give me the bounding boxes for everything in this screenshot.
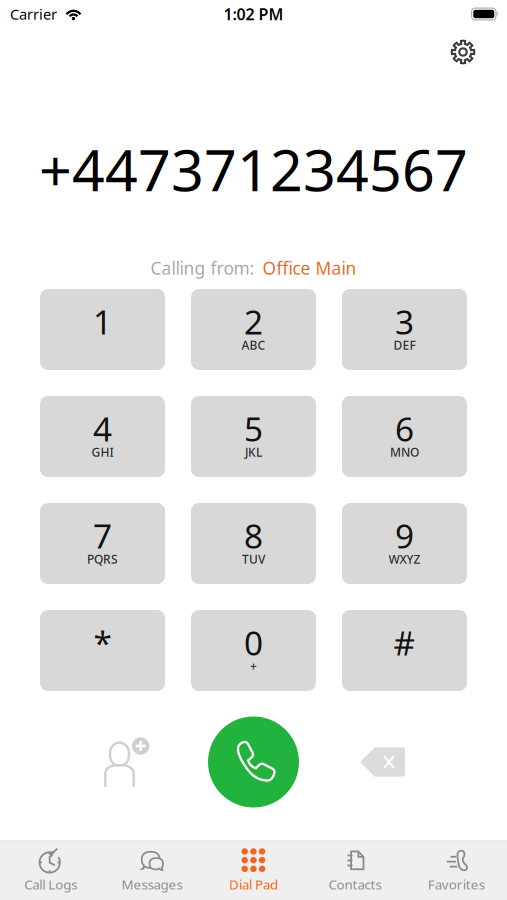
button[interactable]: Call — [203, 712, 303, 812]
button[interactable]: Messages — [101, 841, 203, 900]
staticText: 4 — [93, 406, 112, 451]
button[interactable]: 8 — [191, 503, 316, 584]
staticText: 0 — [244, 620, 263, 665]
button[interactable]: Contacts — [304, 841, 406, 900]
staticText: Office Main — [262, 256, 356, 279]
button[interactable]: Call Logs — [0, 841, 101, 900]
staticText: Contacts — [328, 875, 381, 893]
staticText: MNO — [390, 444, 419, 460]
staticText: PQRS — [87, 551, 118, 567]
button[interactable]: 2 — [191, 289, 316, 370]
staticText: 5 — [244, 406, 263, 451]
button[interactable]: # — [342, 610, 467, 691]
button[interactable]: 7 — [40, 503, 165, 584]
staticText: WXYZ — [388, 551, 420, 567]
staticText: # — [393, 620, 415, 665]
staticText: * — [93, 620, 111, 665]
staticText: +447371234567 — [39, 131, 468, 207]
staticText: + — [250, 658, 257, 674]
staticText: GHI — [91, 444, 113, 460]
staticText: 7 — [93, 513, 112, 558]
button[interactable]: 6 — [342, 396, 467, 477]
staticText: 3 — [395, 299, 414, 344]
staticText: Messages — [122, 875, 183, 893]
staticText: 6 — [395, 406, 414, 451]
staticText: Calling from: — [150, 256, 254, 279]
staticText: TUV — [242, 551, 265, 567]
staticText: JKL — [245, 444, 262, 460]
staticText: Favorites — [428, 875, 485, 893]
staticText: Call Logs — [24, 875, 77, 893]
button[interactable]: 9 — [342, 503, 467, 584]
button[interactable]: Favorites — [406, 841, 507, 900]
button[interactable]: 0 — [191, 610, 316, 691]
button[interactable]: Add contact — [81, 712, 173, 812]
staticText: ABC — [241, 337, 265, 353]
staticText: Dial Pad — [229, 875, 278, 893]
button[interactable]: Dial Pad — [203, 841, 304, 900]
staticText: 9 — [395, 513, 414, 558]
staticText: 1 — [93, 299, 112, 344]
button[interactable]: * — [40, 610, 165, 691]
button[interactable]: 1 — [40, 289, 165, 370]
button[interactable]: Settings — [441, 30, 485, 74]
staticText: DEF — [393, 337, 415, 353]
staticText: 8 — [244, 513, 263, 558]
staticText: 1:02 PM — [223, 3, 283, 25]
button[interactable]: 3 — [342, 289, 467, 370]
staticText: 2 — [244, 299, 263, 344]
staticText: Carrier — [10, 4, 57, 24]
button[interactable]: 4 — [40, 396, 165, 477]
button[interactable]: 5 — [191, 396, 316, 477]
button[interactable]: Delete — [336, 712, 428, 812]
